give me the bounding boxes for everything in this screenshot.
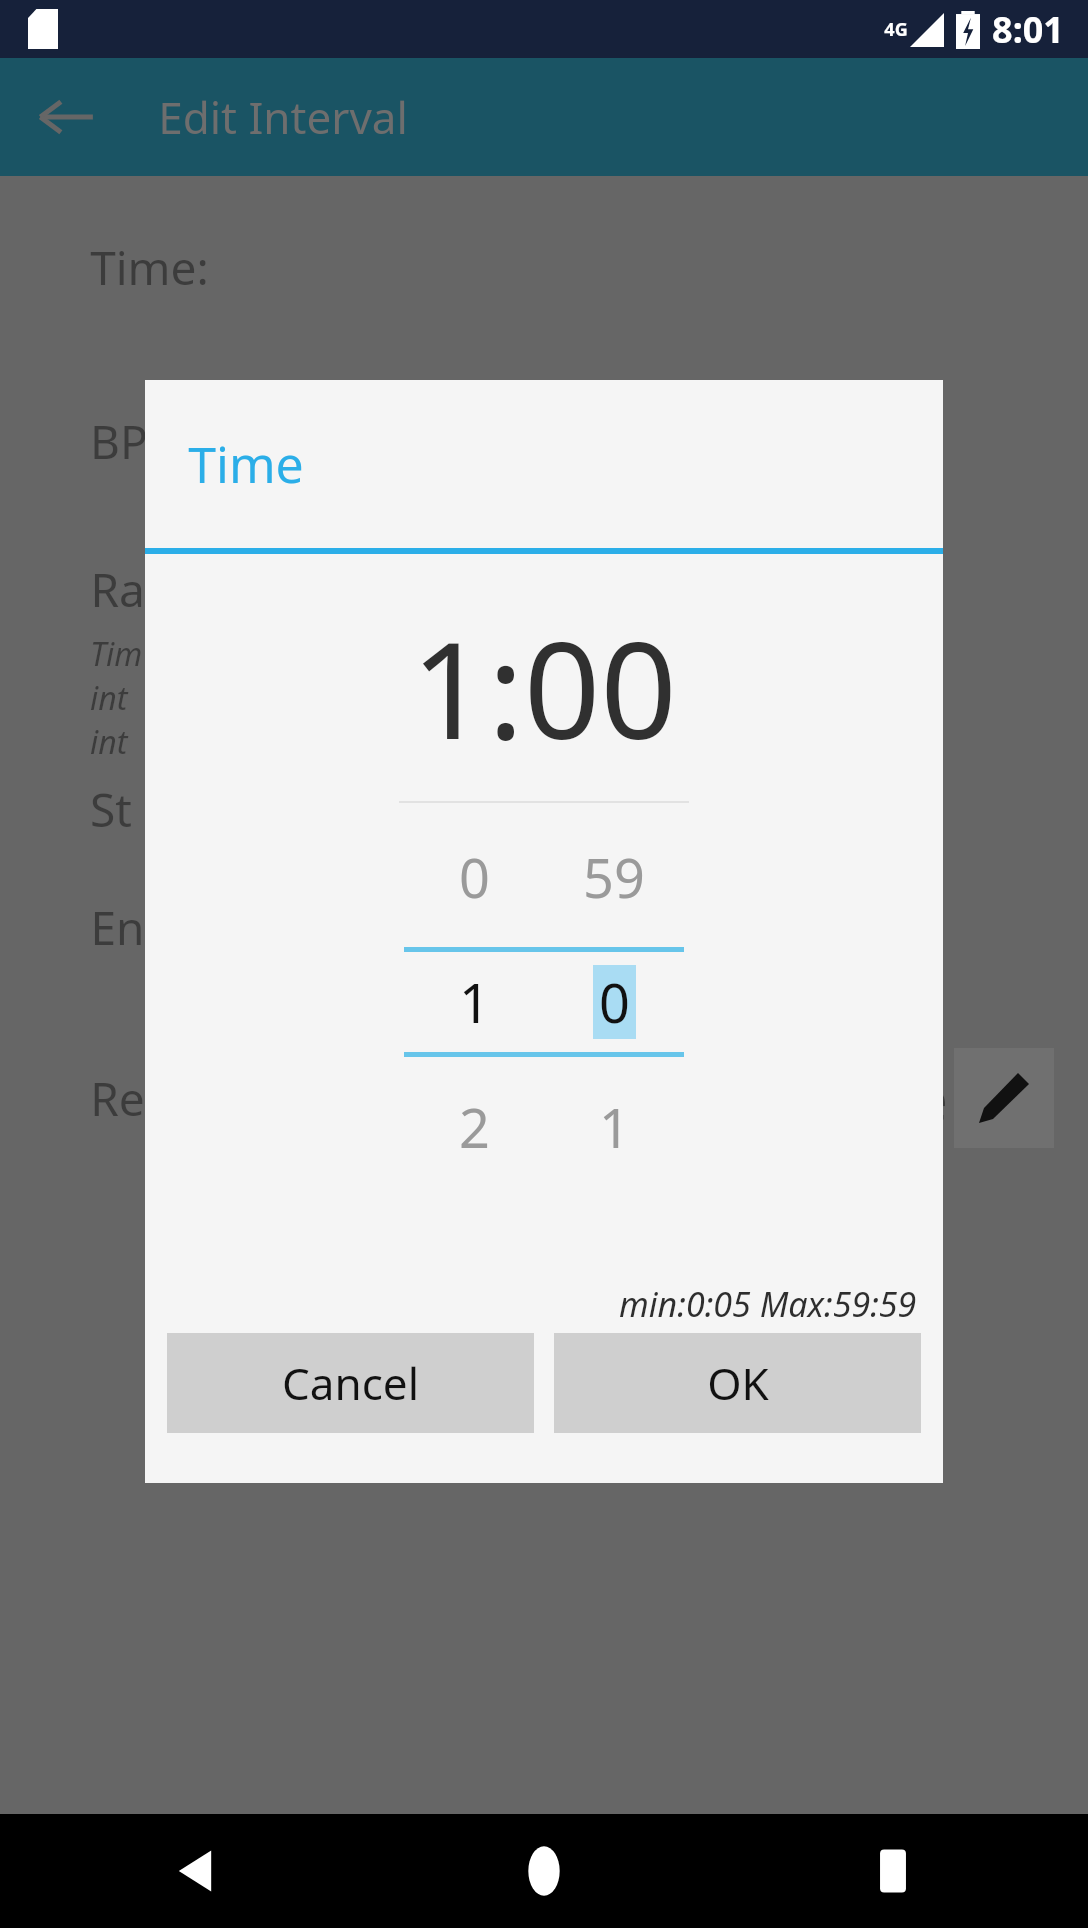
button[interactable]: 0 bbox=[544, 952, 684, 1052]
staticText: 0 bbox=[599, 965, 630, 1039]
staticText: None bbox=[800, 1059, 948, 1138]
staticText: Cancel bbox=[282, 1353, 419, 1413]
staticText: Edit Interval bbox=[158, 87, 408, 147]
button[interactable]: Edit bbox=[954, 1048, 1054, 1148]
staticText: min:0:05 Max:59:59 bbox=[619, 1281, 917, 1327]
button[interactable]: 0 bbox=[404, 827, 544, 927]
staticText: 2 bbox=[459, 1090, 490, 1164]
staticText: En bbox=[90, 896, 145, 959]
staticText: 1 bbox=[459, 965, 490, 1039]
staticText: Repeat: bbox=[90, 1067, 254, 1130]
staticText: int bbox=[90, 676, 128, 720]
button[interactable]: Home bbox=[516, 1843, 572, 1899]
button[interactable]: Cancel bbox=[167, 1333, 534, 1433]
staticText: Ramp: bbox=[90, 558, 229, 621]
staticText: St bbox=[90, 778, 132, 841]
staticText: 59 bbox=[583, 840, 645, 914]
button[interactable]: 2 bbox=[404, 1077, 544, 1177]
button[interactable]: Recents bbox=[866, 1844, 920, 1898]
staticText: 8:01 bbox=[992, 5, 1064, 54]
staticText: 1:00 bbox=[411, 596, 677, 779]
staticText: Tim bbox=[90, 632, 143, 676]
button[interactable]: Back bbox=[34, 85, 98, 149]
staticText: Time: bbox=[90, 236, 209, 299]
button[interactable]: 1 bbox=[404, 952, 544, 1052]
button[interactable]: 59 bbox=[544, 827, 684, 927]
staticText: int bbox=[90, 720, 128, 764]
staticText: 0 bbox=[459, 840, 490, 914]
staticText: OK bbox=[707, 1353, 769, 1413]
button[interactable]: OK bbox=[554, 1333, 921, 1433]
staticText: Time bbox=[188, 430, 304, 498]
button[interactable]: 1 bbox=[544, 1077, 684, 1177]
button[interactable]: Back bbox=[168, 1841, 228, 1901]
staticText: 1 bbox=[599, 1090, 630, 1164]
staticText: BPM: bbox=[90, 410, 202, 473]
staticText: 4G bbox=[884, 17, 908, 42]
